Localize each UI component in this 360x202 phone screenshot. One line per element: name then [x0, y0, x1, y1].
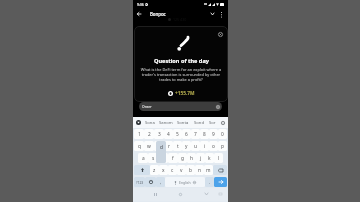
staticText: 8 [203, 131, 206, 138]
staticText: b [189, 167, 192, 174]
staticText: n [198, 167, 201, 174]
button[interactable]: 1 [134, 129, 144, 139]
button[interactable]: e [154, 141, 164, 151]
button[interactable]: Backspace [213, 165, 227, 175]
button[interactable]: f [168, 153, 178, 163]
staticText: c [171, 167, 174, 174]
button[interactable]: p [218, 141, 227, 151]
button[interactable]: s [148, 153, 158, 163]
staticText: z [153, 167, 156, 174]
staticText: 3 [158, 131, 161, 138]
button[interactable]: 3 [154, 129, 164, 139]
button[interactable]: i [200, 141, 209, 151]
button[interactable]: Shift [134, 165, 150, 175]
button[interactable]: Ответ [139, 102, 222, 111]
button[interactable]: d [158, 153, 168, 163]
button[interactable]: o [209, 141, 218, 151]
staticText: g [181, 155, 184, 162]
staticText: p [221, 143, 224, 150]
staticText: y [185, 143, 188, 150]
button[interactable]: Back [135, 10, 143, 18]
button[interactable]: Expand [208, 10, 216, 18]
button[interactable]: c [168, 165, 177, 175]
staticText: v [180, 167, 183, 174]
button[interactable]: 5 [173, 129, 182, 139]
button[interactable]: 2 [144, 129, 154, 139]
button[interactable]: j [196, 153, 205, 163]
button[interactable]: r [164, 141, 173, 151]
button[interactable]: Close [218, 32, 223, 37]
staticText: 6 [185, 131, 188, 138]
button[interactable]: a [138, 153, 148, 163]
staticText: f [172, 155, 174, 162]
staticText: . [209, 179, 211, 185]
button[interactable]: g [178, 153, 187, 163]
button[interactable]: 9 [209, 129, 218, 139]
staticText: Ответ [142, 104, 152, 109]
staticText: m [206, 167, 211, 174]
staticText: e [158, 143, 161, 150]
staticText: Sor [209, 120, 216, 126]
staticText: 0 [221, 131, 224, 138]
staticText: Sond [194, 120, 204, 126]
button[interactable]: w [144, 141, 154, 151]
button[interactable]: ?123 [134, 177, 145, 187]
staticText: r [168, 143, 170, 150]
staticText: q [138, 143, 141, 150]
staticText: d [160, 144, 163, 151]
button[interactable]: b [186, 165, 195, 175]
staticText: l [218, 155, 220, 162]
button[interactable]: 4 [164, 129, 173, 139]
staticText: 4 [167, 131, 170, 138]
button[interactable]: 6 [182, 129, 191, 139]
staticText: 7 [194, 131, 197, 138]
button[interactable]: More options [217, 10, 225, 18]
button[interactable]: x [159, 165, 168, 175]
staticText: i [204, 143, 206, 150]
staticText: 9 [212, 131, 215, 138]
staticText: What is the DeFi term for an exploit whe… [140, 67, 222, 82]
staticText: ?123 [136, 180, 144, 185]
button[interactable]: m [204, 165, 213, 175]
staticText: 1 [138, 131, 141, 138]
button[interactable]: z [150, 165, 159, 175]
staticText: 2 [148, 131, 151, 138]
button[interactable]: u [191, 141, 200, 151]
button[interactable]: 0 [218, 129, 227, 139]
button[interactable]: , [156, 177, 165, 187]
staticText: 9:36 [137, 2, 144, 7]
button[interactable]: . [205, 177, 214, 187]
staticText: w [147, 143, 151, 150]
button[interactable]: Back [202, 190, 210, 198]
button[interactable]: Emoji [145, 177, 156, 187]
staticText: o [212, 143, 215, 150]
button[interactable]: k [205, 153, 214, 163]
button[interactable]: 7 [191, 129, 200, 139]
button[interactable]: Recents [151, 190, 159, 198]
staticText: a [142, 155, 145, 162]
staticText: u [194, 143, 197, 150]
staticText: h [190, 155, 193, 162]
staticText: Question of the day [154, 57, 209, 65]
button[interactable]: l [214, 153, 223, 163]
staticText: x [162, 167, 165, 174]
button[interactable]: Enter [214, 177, 227, 187]
staticText: Sanom [159, 120, 173, 126]
staticText: English [179, 180, 191, 185]
staticText: +155.7M [175, 90, 195, 97]
staticText: Вопрос [150, 11, 166, 17]
button[interactable]: Home [176, 190, 184, 198]
button[interactable]: Hide keyboard [216, 190, 224, 198]
button[interactable]: t [173, 141, 182, 151]
button[interactable]: English [165, 177, 205, 187]
button[interactable]: n [195, 165, 204, 175]
staticText: , [160, 179, 162, 185]
button[interactable]: y [182, 141, 191, 151]
button[interactable]: 8 [200, 129, 209, 139]
button[interactable]: q [134, 141, 144, 151]
button[interactable]: h [187, 153, 196, 163]
button[interactable]: v [177, 165, 186, 175]
staticText: Sona [145, 120, 155, 126]
staticText: Sonta [177, 120, 189, 126]
